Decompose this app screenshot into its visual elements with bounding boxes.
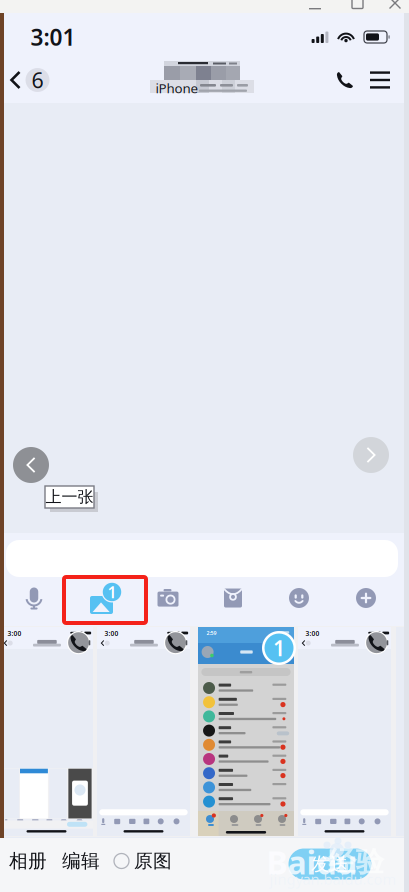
button[interactable]: Next (353, 437, 389, 473)
button[interactable]: Call (328, 63, 362, 97)
button[interactable]: Red packet (213, 578, 253, 618)
staticText: 1 (107, 581, 116, 603)
button[interactable]: 6 (5, 63, 55, 97)
staticText: 1 (273, 634, 285, 662)
staticText: 经验 (328, 845, 384, 879)
button[interactable]: Emoji (279, 578, 319, 618)
staticText: 上一张 (45, 487, 93, 507)
button[interactable]: More (346, 578, 386, 618)
button[interactable]: 编辑 (59, 846, 103, 876)
staticText: jingyan.baidu.com (269, 869, 396, 889)
staticText: iPhone (155, 79, 198, 97)
staticText: 2:59 (206, 629, 216, 637)
staticText: 相册 (9, 849, 47, 872)
staticText: 3:01 (30, 22, 75, 52)
staticText: 3:00 (305, 629, 319, 638)
button[interactable]: Menu (363, 63, 397, 97)
staticText: Baidu (266, 841, 357, 883)
button[interactable]: Voice message (14, 578, 54, 618)
button[interactable]: Camera (148, 578, 188, 618)
button[interactable]: Photos (81, 580, 125, 620)
staticText: 3:00 (7, 629, 21, 638)
button[interactable]: 发送 (288, 848, 371, 879)
staticText: 发送 (311, 852, 349, 875)
staticText: 原图 (134, 849, 172, 872)
staticText: 编辑 (62, 849, 100, 872)
button[interactable]: 原图 (114, 846, 172, 876)
staticText: 6 (31, 66, 43, 94)
button[interactable]: 相册 (6, 846, 50, 876)
button[interactable]: Previous (13, 447, 49, 483)
staticText: 3:00 (104, 629, 118, 638)
